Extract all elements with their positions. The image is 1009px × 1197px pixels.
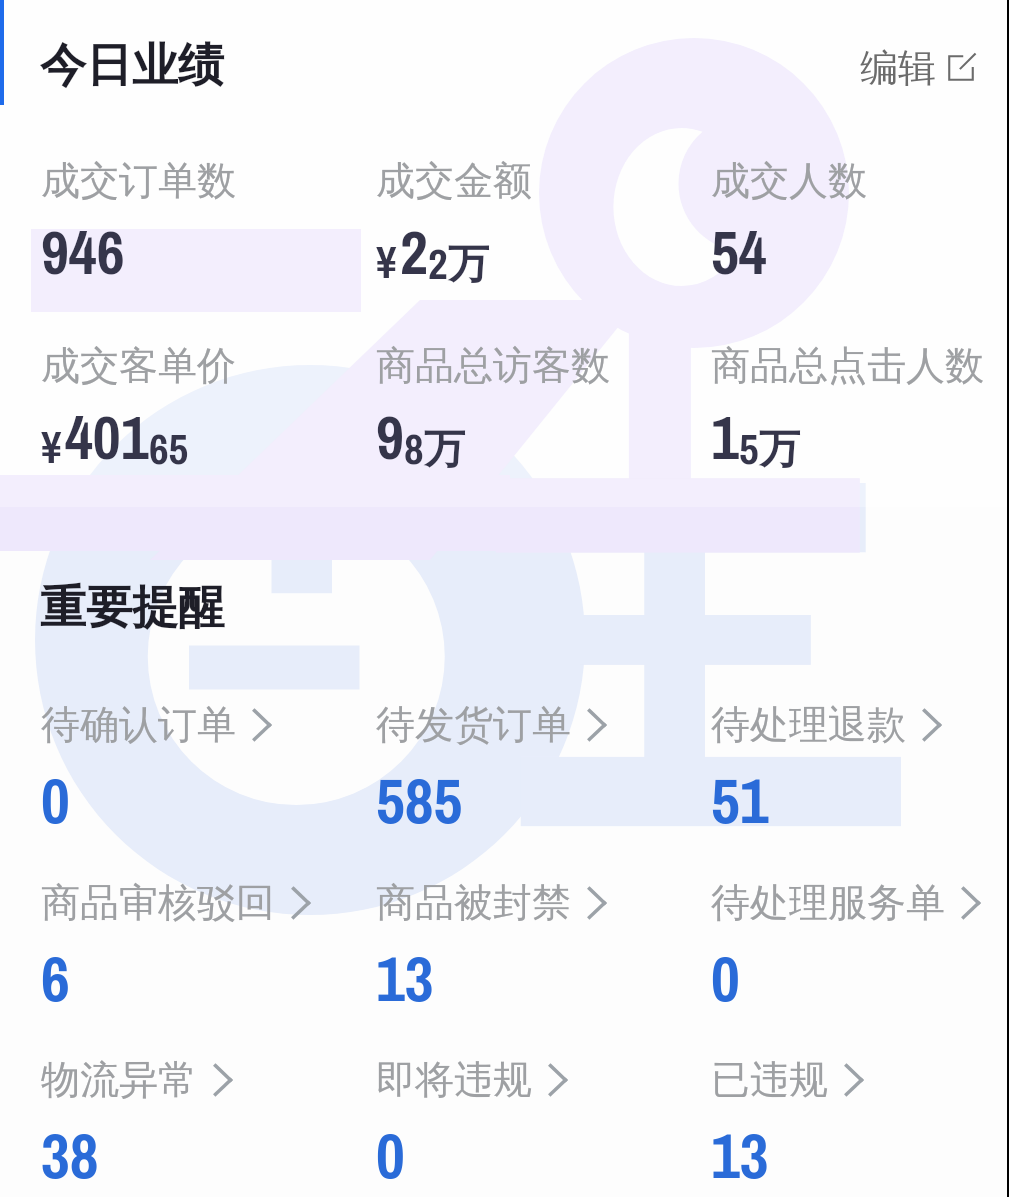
staticText: 38 [41,1113,99,1197]
staticText: 2 [428,234,448,292]
staticText: 待发货订单 [376,700,571,749]
staticText: 65 [149,419,189,477]
staticText: 6 [41,936,70,1021]
staticText: 即将违规 [376,1055,532,1104]
button[interactable]: 商品审核驳回 [41,878,310,1021]
staticText: 54 [711,211,767,293]
staticText: 5 [739,419,759,477]
staticText: 商品被封禁 [376,878,571,927]
staticText: 946 [41,211,125,293]
staticText: 2 [400,211,428,293]
staticText: 成交订单数 [41,156,236,205]
button[interactable]: 待处理退款 [711,700,941,843]
staticText: 万 [448,239,489,291]
button[interactable]: 物流异常 [41,1055,232,1197]
staticText: 8 [404,419,424,477]
staticText: 待处理退款 [711,700,906,749]
staticText: 待处理服务单 [711,878,945,927]
staticText: 编辑 [860,44,936,92]
staticText: 万 [424,424,465,476]
staticText: ¥ [376,231,397,292]
button[interactable]: 待处理服务单 [711,878,980,1021]
staticText: 重要提醒 [40,579,224,637]
button[interactable]: 编辑 [856,40,979,96]
button[interactable]: 已违规 [711,1055,863,1197]
staticText: 51 [711,758,769,843]
staticText: 401 [65,396,149,478]
staticText: 0 [711,936,740,1021]
staticText: 成交金额 [376,156,532,205]
button[interactable]: 商品被封禁 [376,878,606,1021]
staticText: 已违规 [711,1055,828,1104]
staticText: 成交人数 [711,156,867,205]
staticText: 13 [376,936,434,1021]
staticText: 9 [376,396,404,478]
staticText: 成交客单价 [41,341,236,390]
staticText: 13 [711,1113,769,1197]
staticText: 商品审核驳回 [41,878,275,927]
staticText: 585 [376,758,463,843]
button[interactable]: 待发货订单 [376,700,606,843]
staticText: 待确认订单 [41,700,236,749]
staticText: ¥ [41,416,62,477]
staticText: 今日业绩 [40,37,224,95]
staticText: 商品总访客数 [376,341,610,390]
staticText: 商品总点击人数 [711,341,984,390]
staticText: 0 [41,758,70,843]
staticText: 0 [376,1113,405,1197]
button[interactable]: 待确认订单 [41,700,271,843]
other: Edit [947,54,975,82]
button[interactable]: 即将违规 [376,1055,567,1197]
staticText: 1 [711,396,739,478]
staticText: 物流异常 [41,1055,197,1104]
staticText: 万 [759,424,800,476]
